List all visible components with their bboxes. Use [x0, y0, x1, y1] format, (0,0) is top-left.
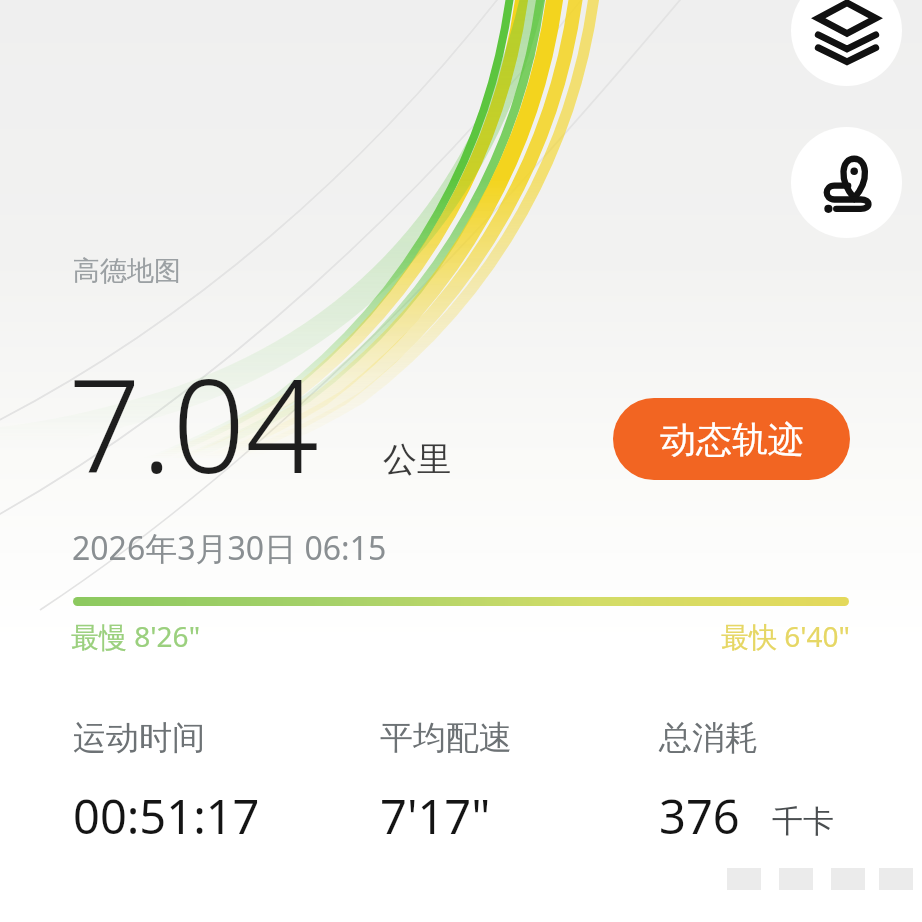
button[interactable]: 动态轨迹: [613, 398, 850, 480]
staticText: 总消耗: [659, 717, 758, 759]
button[interactable]: Route details: [791, 127, 902, 238]
staticText: 00:51:17: [73, 784, 260, 848]
staticText: 运动时间: [73, 717, 205, 759]
staticText: 平均配速: [380, 717, 512, 759]
staticText: 最快 6'40": [609, 617, 850, 655]
staticText: 公里: [383, 438, 451, 481]
button[interactable]: Map layers: [791, 0, 902, 86]
staticText: 千卡: [772, 802, 834, 841]
staticText: 2026年3月30日 06:15: [72, 526, 387, 570]
staticText: 最慢 8'26": [71, 617, 201, 655]
staticText: 高德地图: [73, 254, 181, 288]
staticText: 7.04: [68, 336, 319, 510]
staticText: 动态轨迹: [660, 417, 804, 462]
staticText: 7'17": [380, 784, 491, 848]
staticText: 376: [659, 784, 740, 848]
